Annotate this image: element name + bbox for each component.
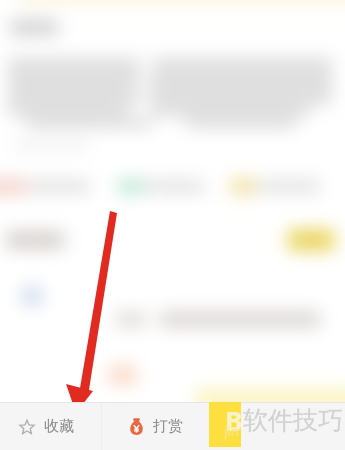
staticText: 收藏 [44,417,74,436]
staticText: B [225,403,243,438]
button[interactable]: 收藏 [0,403,101,450]
other: 收藏 [19,419,35,435]
button[interactable]: 打赏 [102,403,215,450]
staticText: 打赏 [153,417,183,436]
staticText: 软件技巧 [243,405,343,436]
staticText: jin [224,422,239,440]
